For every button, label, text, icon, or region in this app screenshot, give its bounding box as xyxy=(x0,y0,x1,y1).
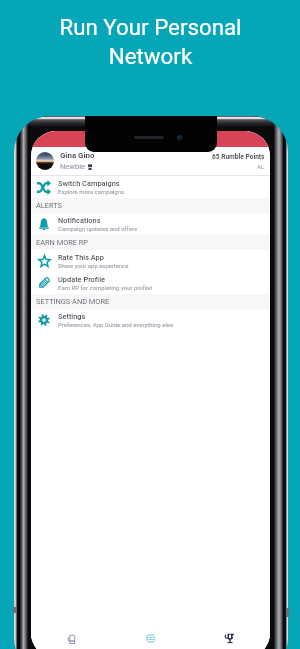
staticText: EARN MORE RP xyxy=(36,238,89,247)
staticText: Newbie xyxy=(60,162,85,171)
staticText: Settings xyxy=(58,312,86,321)
staticText: Explore more campaigns xyxy=(58,188,125,195)
staticText: Switch Campaigns xyxy=(58,179,120,188)
staticText: Share your app experience xyxy=(58,262,129,269)
staticText: Run Your Personal Network xyxy=(59,14,242,70)
button[interactable]: Switch Campaigns xyxy=(31,176,270,198)
staticText: Preferences, App Guide and everything el… xyxy=(58,321,174,328)
button[interactable]: Update Profile xyxy=(31,272,270,294)
staticText: Earn RP for completing your profile! xyxy=(58,284,153,291)
button[interactable]: Network xyxy=(110,619,190,649)
staticText: 65 Rumble Points xyxy=(212,153,265,161)
button[interactable]: Rate This App xyxy=(31,250,270,272)
button[interactable]: Fights xyxy=(31,619,110,649)
button[interactable]: Gina Gino xyxy=(31,147,270,175)
staticText: Gina Gino xyxy=(60,151,95,160)
staticText: Notifications xyxy=(58,216,101,225)
button[interactable]: Settings xyxy=(31,309,270,331)
staticText: Update Profile xyxy=(58,275,105,284)
button[interactable]: Leaderboard xyxy=(190,619,270,649)
staticText: SETTINGS AND MORE xyxy=(36,297,110,306)
staticText: Rate This App xyxy=(58,253,104,262)
staticText: Campaign updates and offers xyxy=(58,225,138,232)
button[interactable]: Notifications xyxy=(31,213,270,235)
staticText: AL xyxy=(257,163,265,170)
staticText: ALERTS xyxy=(36,201,63,210)
